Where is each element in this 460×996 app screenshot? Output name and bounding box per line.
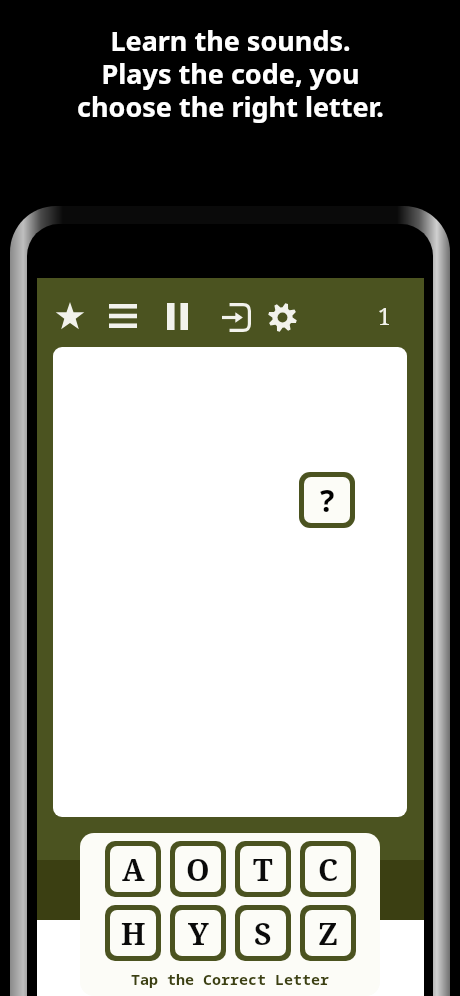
button[interactable]: Z [305, 910, 351, 956]
button[interactable]: ? [304, 477, 350, 523]
staticText: H [121, 913, 146, 954]
staticText: Z [318, 913, 339, 954]
staticText: O [186, 849, 210, 890]
staticText: 1 [378, 300, 391, 331]
button[interactable]: Settings [265, 300, 299, 334]
staticText: Tap the Correct Letter [131, 969, 330, 989]
button[interactable]: Menu [107, 300, 139, 332]
staticText: T [253, 849, 273, 890]
button[interactable]: A [110, 846, 156, 892]
button[interactable]: O [175, 846, 221, 892]
button[interactable]: H [110, 910, 156, 956]
button[interactable]: C [305, 846, 351, 892]
staticText: S [254, 913, 272, 954]
staticText: ? [320, 480, 335, 521]
button[interactable]: Login [219, 300, 253, 334]
staticText: A [122, 849, 145, 890]
staticText: Learn the sounds. Plays the code, you ch… [77, 22, 384, 125]
button[interactable]: Favorite [54, 300, 86, 332]
button[interactable]: 1 [367, 298, 401, 332]
button[interactable]: Y [175, 910, 221, 956]
staticText: Y [188, 913, 209, 954]
staticText: C [318, 849, 339, 890]
button[interactable]: S [240, 910, 286, 956]
button[interactable]: T [240, 846, 286, 892]
button[interactable]: Pause [161, 300, 193, 332]
